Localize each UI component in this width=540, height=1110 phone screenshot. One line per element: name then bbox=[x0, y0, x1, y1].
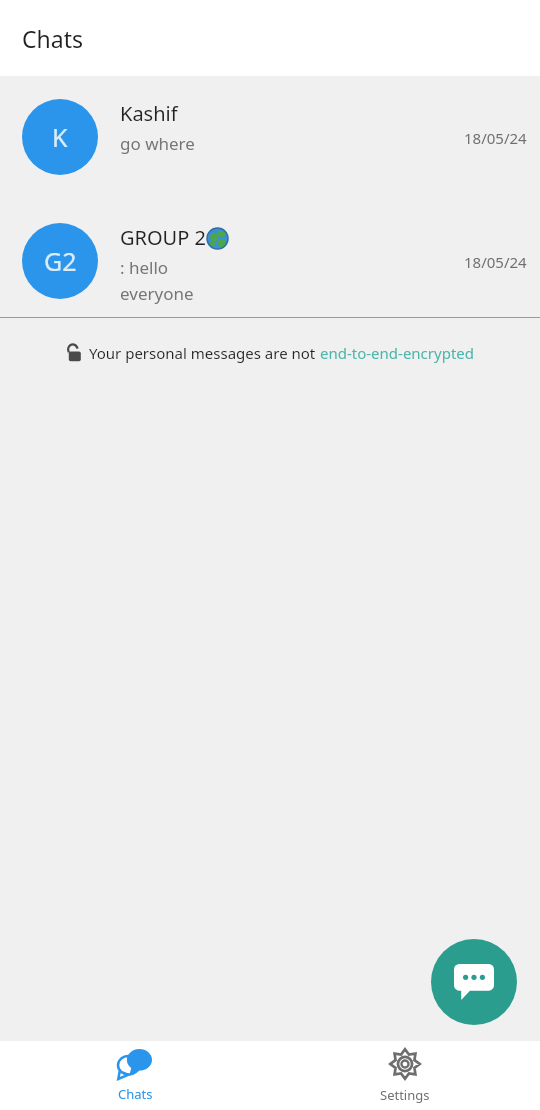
staticText: K bbox=[52, 120, 68, 154]
button[interactable]: Your personal messages are not bbox=[0, 318, 540, 388]
staticText: Your personal messages are not bbox=[89, 343, 320, 363]
staticText: Chats bbox=[22, 23, 83, 54]
staticText: go where bbox=[120, 132, 195, 155]
staticText: G2 bbox=[44, 244, 77, 278]
button[interactable]: Chats bbox=[0, 1041, 270, 1110]
staticText: end-to-end-encrypted bbox=[320, 343, 474, 363]
button[interactable]: New chat bbox=[431, 939, 517, 1025]
staticText: 18/05/24 bbox=[464, 128, 527, 148]
staticText: : hello bbox=[120, 256, 169, 279]
staticText: GROUP 2 bbox=[120, 224, 206, 251]
staticText: 18/05/24 bbox=[464, 252, 527, 272]
staticText: Chats bbox=[118, 1085, 153, 1103]
button[interactable]: G2 bbox=[0, 198, 540, 317]
staticText: everyone bbox=[120, 282, 194, 305]
button[interactable]: Settings bbox=[270, 1041, 540, 1110]
staticText: Settings bbox=[380, 1086, 430, 1104]
button[interactable]: K bbox=[0, 76, 540, 198]
staticText: Kashif bbox=[120, 100, 178, 127]
